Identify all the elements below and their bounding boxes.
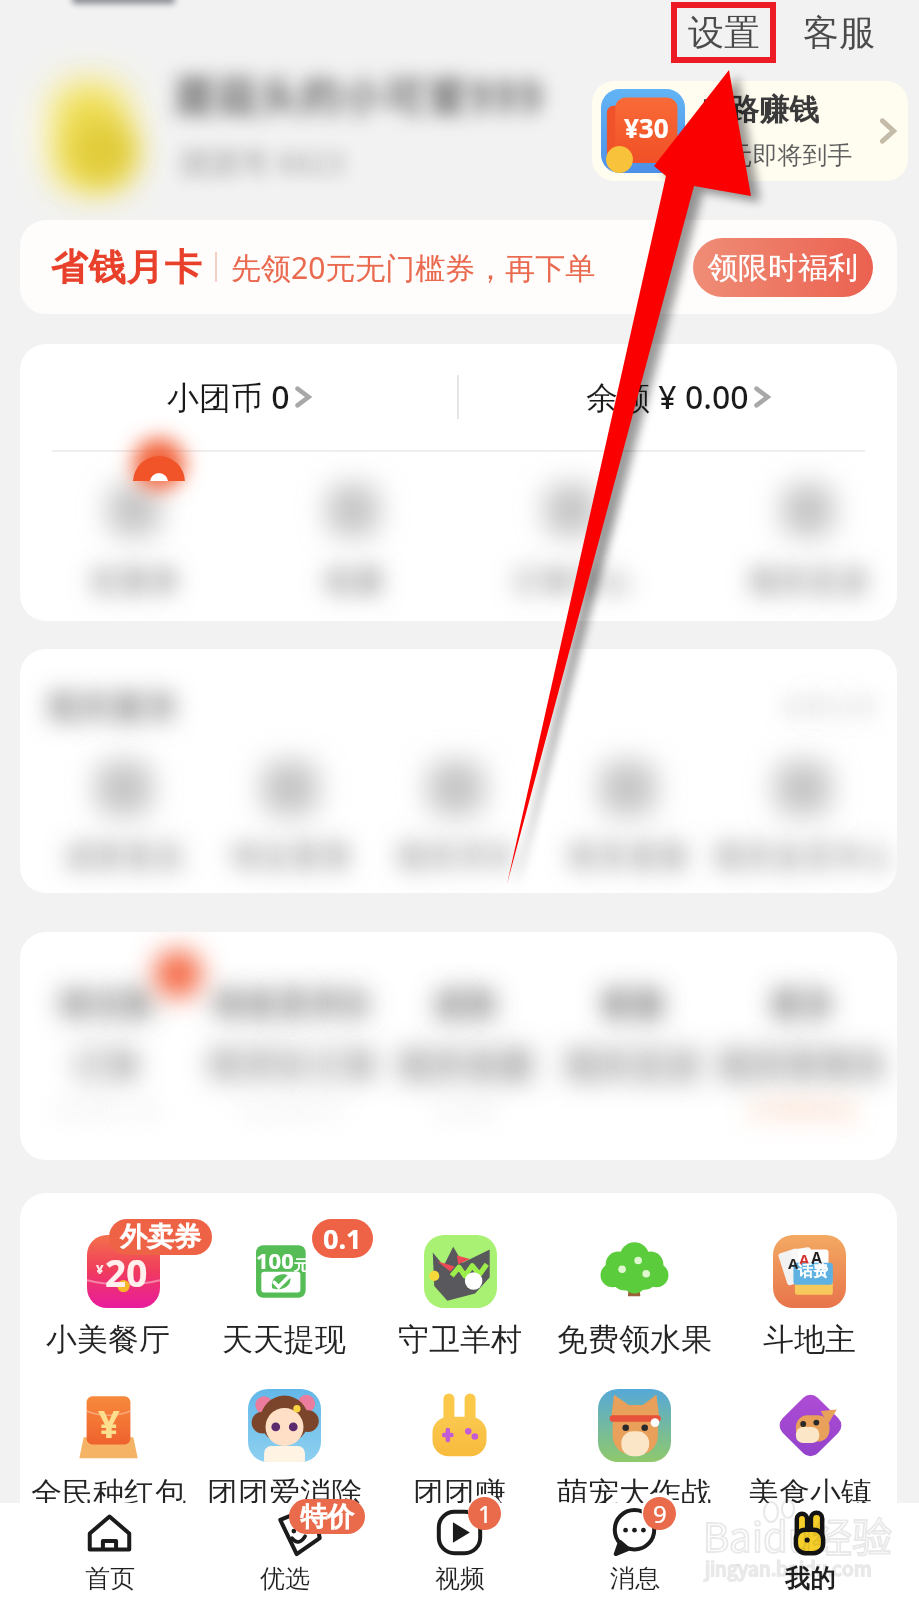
staticText: 团团赚 xyxy=(413,1474,506,1513)
staticText: 30元即将到手 xyxy=(699,137,853,171)
staticText: 9 xyxy=(653,1497,667,1530)
staticText: 首页 xyxy=(85,1563,135,1594)
other: Mine xyxy=(786,1509,833,1556)
staticText: 走路赚钱 xyxy=(699,91,819,129)
button[interactable] xyxy=(20,932,897,1160)
button[interactable]: Home xyxy=(22,1503,197,1600)
staticText: 1 xyxy=(478,1497,492,1530)
button[interactable]: 守卫羊村 xyxy=(372,1235,547,1359)
button[interactable]: 余额 ¥ 0.00 xyxy=(459,344,897,450)
button[interactable]: 萌宠大作战 xyxy=(547,1389,722,1513)
other: Deals xyxy=(276,1509,323,1556)
button[interactable]: 团团赚 xyxy=(372,1389,547,1513)
staticText: 免费领水果 xyxy=(557,1320,712,1359)
button[interactable]: Deals xyxy=(197,1503,372,1600)
button[interactable]: 免费领水果 xyxy=(547,1235,722,1359)
button[interactable]: ¥ xyxy=(20,1389,196,1513)
button[interactable]: 美食小镇 xyxy=(722,1389,897,1513)
staticText: 特价 xyxy=(300,1500,354,1534)
staticText: 先领20元无门槛券，再下单 xyxy=(231,247,596,288)
button[interactable]: 小团币 0 xyxy=(20,344,457,450)
button[interactable]: ¥ xyxy=(20,1235,196,1359)
staticText: 萌宠大作战 xyxy=(557,1474,712,1513)
staticText: 余额 ¥ 0.00 xyxy=(586,375,749,419)
staticText: 外卖券 xyxy=(120,1220,201,1254)
staticText: 斗地主 xyxy=(763,1320,856,1359)
staticText: 优选 xyxy=(260,1563,310,1594)
button[interactable]: Video xyxy=(372,1503,547,1600)
staticText: 天天提现 xyxy=(222,1320,346,1359)
staticText: 领限时福利 xyxy=(708,249,858,287)
staticText: 视频 xyxy=(435,1563,485,1594)
button[interactable]: 客服 xyxy=(802,2,876,63)
button[interactable]: A xyxy=(722,1235,897,1359)
other: Home xyxy=(86,1509,133,1556)
button[interactable]: 团团爱消除 xyxy=(196,1389,372,1513)
staticText: A xyxy=(799,1249,810,1269)
staticText: 守卫羊村 xyxy=(398,1320,522,1359)
staticText: 我的 xyxy=(785,1563,835,1594)
button[interactable]: ¥30 xyxy=(592,81,908,181)
other: Messages xyxy=(611,1509,658,1556)
staticText: 元 xyxy=(294,1257,308,1275)
staticText: 小团币 0 xyxy=(167,375,290,419)
staticText: 话费 xyxy=(798,1262,828,1281)
staticText: 20 xyxy=(105,1247,148,1297)
button[interactable] xyxy=(20,649,897,893)
button[interactable]: Mine xyxy=(722,1503,897,1600)
button[interactable]: 设置 xyxy=(671,2,776,63)
other: Video xyxy=(436,1509,483,1556)
staticText: 全民种红包 xyxy=(31,1474,186,1513)
button[interactable]: 省钱月卡 xyxy=(20,220,897,314)
staticText: 省钱月卡 xyxy=(50,244,202,291)
staticText: 小美餐厅 xyxy=(46,1320,170,1359)
staticText: 消息 xyxy=(610,1563,660,1594)
staticText: A xyxy=(811,1247,823,1269)
staticText: ¥ xyxy=(98,1397,120,1449)
button[interactable]: 100 xyxy=(196,1235,372,1359)
button[interactable]: 领限时福利 xyxy=(693,238,873,297)
staticText: 客服 xyxy=(803,10,875,55)
staticText: 美食小镇 xyxy=(748,1474,872,1513)
staticText: A xyxy=(788,1253,799,1273)
staticText: 100 xyxy=(256,1245,294,1275)
button[interactable]: Messages xyxy=(547,1503,722,1600)
staticText: ¥30 xyxy=(624,110,669,145)
staticText: 0.1 xyxy=(323,1220,362,1257)
staticText: ¥ xyxy=(96,1260,104,1278)
staticText: 设置 xyxy=(688,10,760,55)
staticText: 团团爱消除 xyxy=(207,1474,362,1513)
